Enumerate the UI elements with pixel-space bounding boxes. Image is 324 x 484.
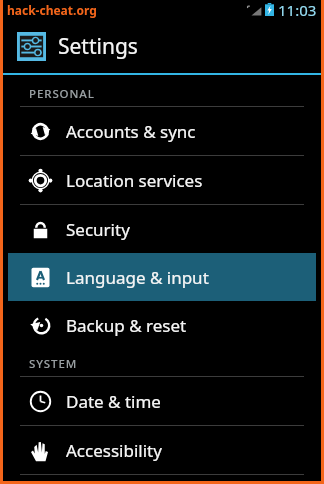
staticText: Accounts & sync <box>66 120 196 143</box>
staticText: Date & time <box>66 390 161 413</box>
staticText: Settings <box>58 32 138 61</box>
button[interactable]: Security <box>3 205 321 253</box>
staticText: Backup & reset <box>66 314 187 337</box>
staticText: Security <box>66 218 130 241</box>
button[interactable]: Accounts & sync <box>3 107 321 155</box>
button[interactable]: Settings app icon <box>3 19 321 73</box>
staticText: hack-cheat.org <box>7 2 97 18</box>
staticText: PERSONAL <box>29 86 95 102</box>
staticText: SYSTEM <box>29 356 78 372</box>
other: Settings app icon <box>17 32 46 61</box>
staticText: 11:03 <box>278 0 317 19</box>
button[interactable]: Accessibility <box>3 426 321 474</box>
staticText: Location services <box>66 169 203 192</box>
staticText: Accessibility <box>66 439 162 462</box>
button[interactable]: Location services <box>3 156 321 204</box>
staticText: Language & input <box>66 266 209 289</box>
button[interactable]: Language & input <box>8 253 316 301</box>
button[interactable]: Date & time <box>3 377 321 425</box>
button[interactable]: Backup & reset <box>3 301 321 349</box>
